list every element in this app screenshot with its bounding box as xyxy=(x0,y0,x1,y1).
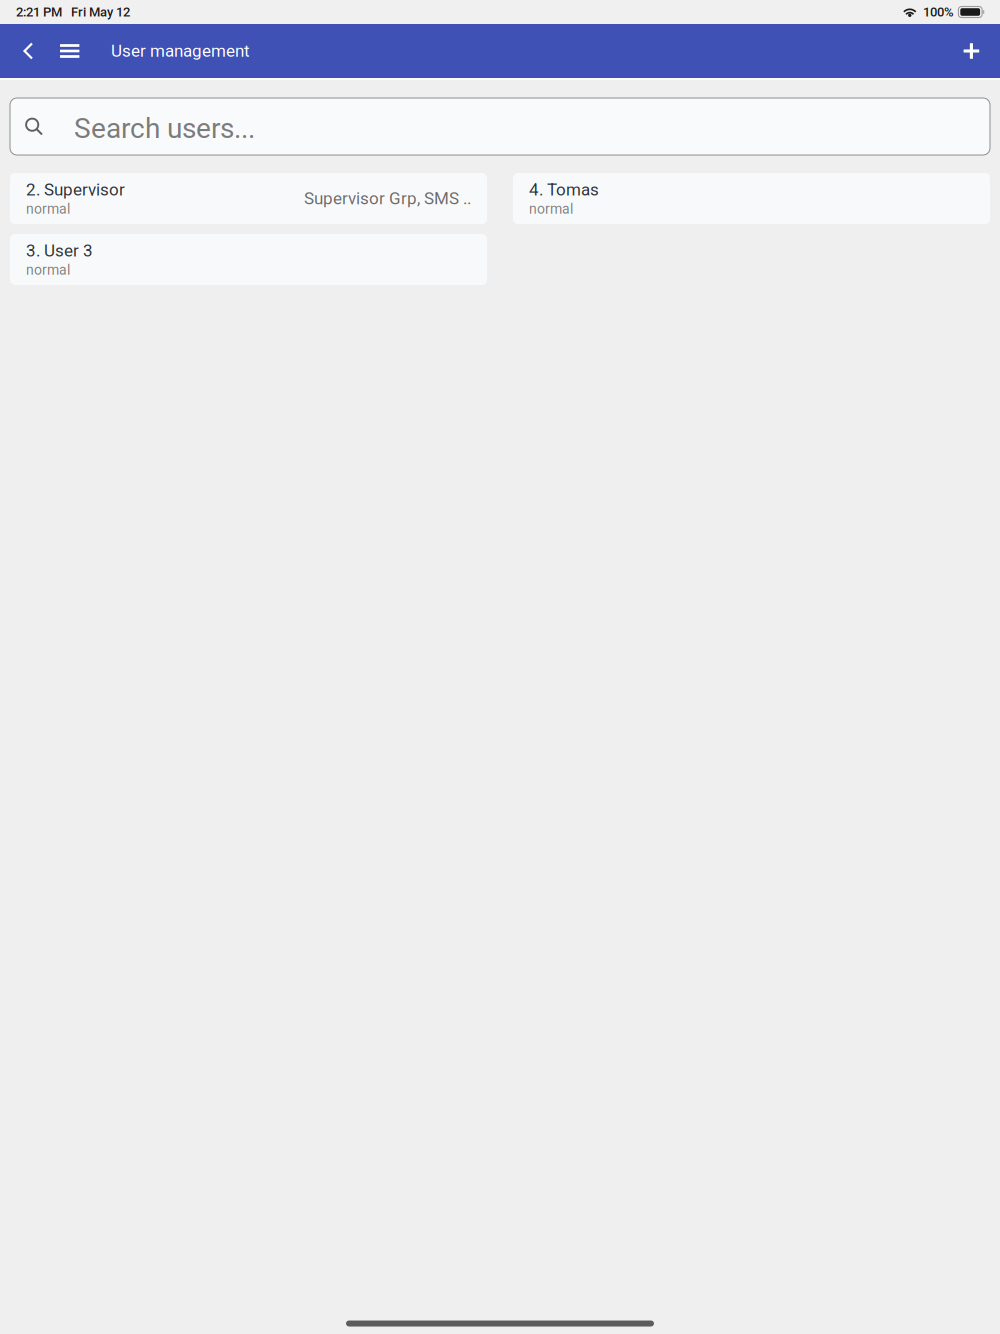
staticText: 4. Tomas xyxy=(529,180,599,200)
button[interactable]: 4. Tomas xyxy=(513,173,990,224)
staticText: 2:21 PM xyxy=(16,4,62,20)
staticText: User management xyxy=(111,41,250,61)
staticText: Fri May 12 xyxy=(71,4,130,20)
button[interactable]: 2. Supervisor xyxy=(10,173,487,224)
staticText: normal xyxy=(529,201,573,217)
staticText: 3. User 3 xyxy=(26,241,93,261)
button[interactable]: Add user xyxy=(959,24,1000,78)
staticText: 2. Supervisor xyxy=(26,180,125,200)
button[interactable]: Search users... xyxy=(10,98,990,155)
staticText: normal xyxy=(26,201,70,217)
button[interactable]: Back xyxy=(0,24,60,78)
staticText: Supervisor Grp, SMS .. xyxy=(304,188,471,208)
staticText: 100% xyxy=(923,4,954,20)
staticText: normal xyxy=(26,262,70,278)
button[interactable]: Menu xyxy=(60,24,79,78)
staticText: Search users... xyxy=(74,112,255,145)
button[interactable]: 3. User 3 xyxy=(10,234,487,285)
